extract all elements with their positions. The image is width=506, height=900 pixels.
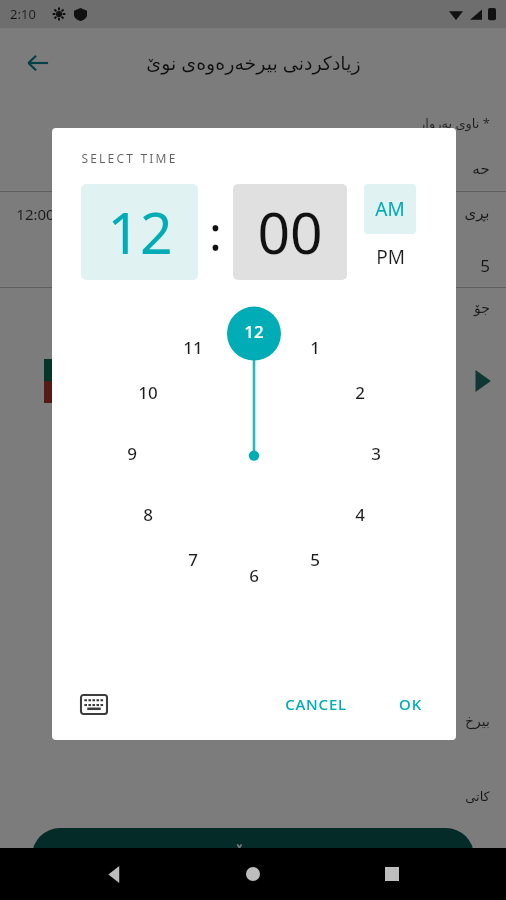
staticText: 12 — [244, 320, 264, 343]
staticText: ناوی بەروار * — [419, 114, 490, 132]
staticText: 6 — [249, 564, 259, 587]
staticText: 12:00 — [16, 204, 55, 224]
button[interactable]: OK — [387, 684, 434, 724]
staticText: 3 — [371, 442, 381, 465]
button[interactable]: 9 — [116, 440, 148, 466]
staticText: 8 — [143, 503, 153, 526]
button[interactable]: کاتێک هەڵبژێرە — [32, 828, 474, 884]
staticText: بیرخ — [465, 713, 490, 729]
button[interactable]: Back — [91, 850, 139, 898]
staticText: OK — [399, 694, 422, 714]
staticText: کاتی — [465, 789, 490, 804]
staticText: 7 — [188, 548, 198, 571]
staticText: بڕی — [464, 204, 490, 221]
button[interactable]: Switch to text input — [74, 684, 114, 724]
button[interactable]: Back — [18, 43, 58, 83]
button[interactable]: AM — [364, 184, 416, 234]
staticText: 4 — [355, 503, 365, 526]
button[interactable]: CANCEL — [273, 684, 359, 724]
button[interactable]: 11 — [177, 334, 209, 360]
button[interactable]: 7 — [177, 546, 209, 572]
staticText: جۆ — [474, 300, 490, 316]
button[interactable]: 8 — [132, 501, 164, 527]
button[interactable]: 12 — [238, 318, 270, 344]
button[interactable]: Home — [229, 850, 277, 898]
staticText: کاتێک هەڵبژێرە — [192, 843, 314, 870]
staticText: 5 — [480, 254, 490, 277]
staticText: CANCEL — [285, 694, 347, 714]
staticText: 00 — [257, 193, 323, 271]
staticText: 2 — [355, 381, 365, 404]
staticText: حە — [472, 160, 490, 177]
staticText: 10 — [138, 381, 158, 404]
button[interactable]: 12 — [81, 184, 198, 280]
button[interactable]: 10 — [132, 379, 164, 405]
staticText: 1 — [310, 336, 320, 359]
staticText: : — [209, 200, 222, 265]
button[interactable]: 1 — [299, 334, 331, 360]
staticText: 12 — [107, 193, 173, 271]
staticText: 9 — [127, 442, 137, 465]
staticText: SELECT TIME — [81, 150, 178, 166]
button[interactable]: 2 — [344, 379, 376, 405]
button[interactable]: 3 — [360, 440, 392, 466]
button[interactable]: 4 — [344, 501, 376, 527]
button[interactable]: 00 — [233, 184, 347, 280]
staticText: AM — [375, 196, 405, 222]
staticText: زیادکردنی بیرخەرەوەی نوێ — [146, 50, 361, 76]
staticText: PM — [376, 244, 405, 270]
staticText: 11 — [183, 336, 203, 359]
button[interactable]: 5 — [299, 546, 331, 572]
button[interactable]: 6 — [238, 562, 270, 588]
button[interactable]: Recent apps — [368, 850, 416, 898]
button[interactable]: PM — [364, 234, 416, 280]
staticText: 5 — [310, 548, 320, 571]
staticText: 2:10 — [10, 5, 36, 23]
